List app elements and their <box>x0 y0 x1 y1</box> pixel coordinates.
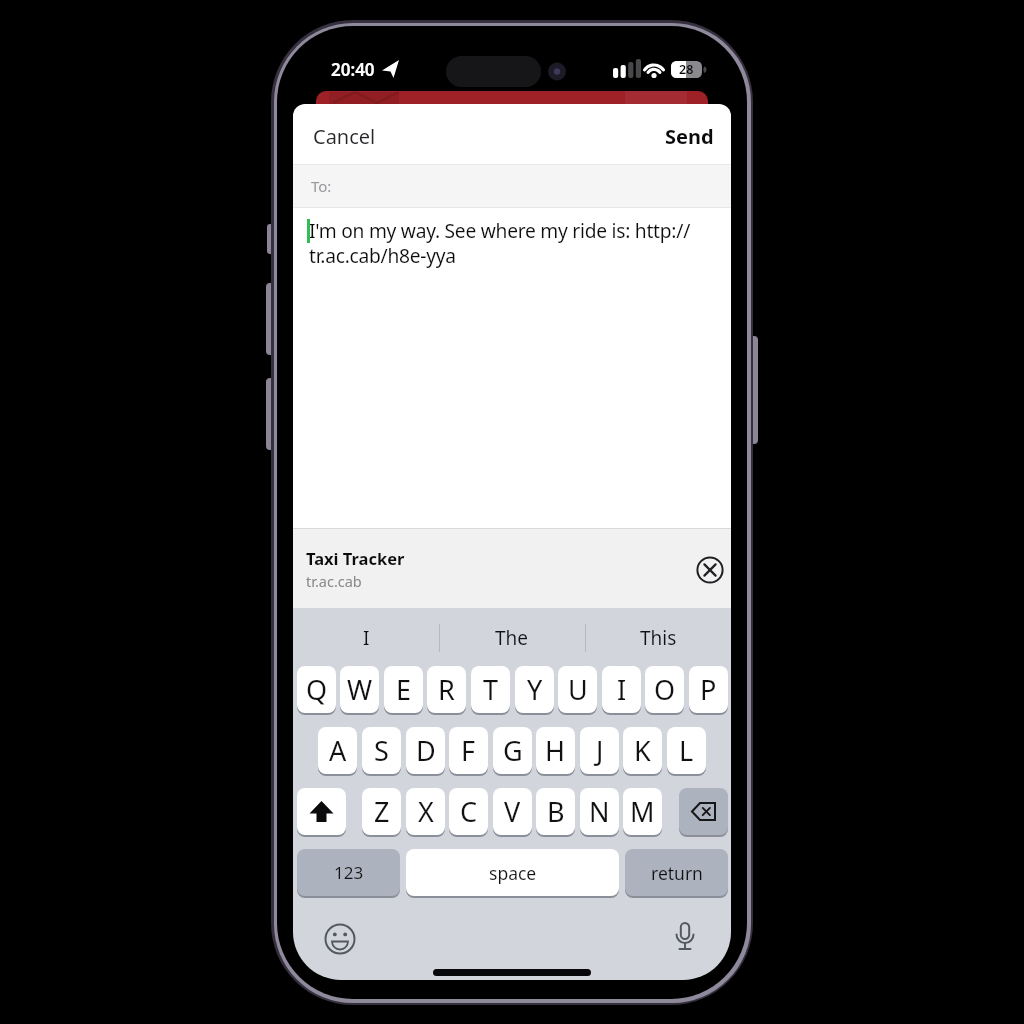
button[interactable]: N <box>580 788 619 835</box>
staticText: 123 <box>334 861 364 884</box>
staticText: G <box>503 732 523 769</box>
button[interactable]: Z <box>362 788 401 835</box>
staticText: O <box>654 671 676 708</box>
button[interactable] <box>695 555 725 585</box>
staticText: V <box>504 793 521 830</box>
button[interactable]: G <box>493 727 532 774</box>
button[interactable]: Send <box>624 121 714 151</box>
staticText: D <box>416 732 436 769</box>
staticText: Q <box>306 671 328 708</box>
staticText: I'm on my way. See where my ride is: htt… <box>309 217 691 268</box>
staticText: C <box>460 793 478 830</box>
staticText: Z <box>374 793 390 830</box>
button[interactable]: space <box>406 849 619 896</box>
button[interactable]: Q <box>297 666 336 713</box>
staticText: A <box>329 732 347 769</box>
staticText: To: <box>311 176 332 196</box>
staticText: Send <box>665 123 714 150</box>
staticText: N <box>589 793 610 830</box>
button[interactable]: X <box>406 788 445 835</box>
button[interactable]: This <box>585 623 731 653</box>
button[interactable]: The <box>439 623 585 653</box>
button[interactable]: O <box>645 666 684 713</box>
button[interactable]: V <box>493 788 532 835</box>
button[interactable]: B <box>536 788 575 835</box>
staticText: R <box>438 671 455 708</box>
staticText: I <box>617 671 627 708</box>
staticText: S <box>374 732 389 769</box>
staticText: X <box>418 793 434 830</box>
staticText: P <box>700 671 717 708</box>
button[interactable]: K <box>623 727 662 774</box>
button[interactable]: S <box>362 727 401 774</box>
button[interactable]: 123 <box>297 849 400 896</box>
button[interactable]: L <box>667 727 706 774</box>
button[interactable]: M <box>623 788 662 835</box>
button[interactable]: F <box>449 727 488 774</box>
button[interactable]: J <box>580 727 619 774</box>
staticText: M <box>630 793 655 830</box>
staticText: This <box>640 625 677 651</box>
button[interactable]: D <box>406 727 445 774</box>
staticText: 20:40 <box>331 58 375 81</box>
button[interactable]: T <box>471 666 510 713</box>
button[interactable] <box>297 788 346 835</box>
button[interactable]: H <box>536 727 575 774</box>
button[interactable] <box>293 164 731 208</box>
staticText: E <box>396 671 412 708</box>
staticText: U <box>568 671 588 708</box>
button[interactable]: A <box>318 727 357 774</box>
button[interactable]: Y <box>515 666 554 713</box>
button[interactable] <box>679 788 728 835</box>
button[interactable]: I <box>602 666 641 713</box>
staticText: B <box>547 793 565 830</box>
staticText: K <box>634 732 651 769</box>
button[interactable]: P <box>689 666 728 713</box>
button[interactable]: I <box>293 623 439 653</box>
staticText: W <box>347 671 373 708</box>
staticText: T <box>483 671 499 708</box>
button[interactable] <box>664 918 706 960</box>
button[interactable]: R <box>427 666 466 713</box>
staticText: F <box>461 732 476 769</box>
button[interactable]: C <box>449 788 488 835</box>
staticText: return <box>651 861 703 885</box>
staticText: H <box>545 732 566 769</box>
button[interactable]: E <box>384 666 423 713</box>
staticText: tr.ac.cab <box>306 571 362 591</box>
staticText: L <box>679 732 694 769</box>
button[interactable]: Cancel <box>313 121 403 151</box>
button[interactable]: U <box>558 666 597 713</box>
staticText: Cancel <box>313 123 376 150</box>
button[interactable]: W <box>340 666 379 713</box>
staticText: Taxi Tracker <box>306 547 405 569</box>
staticText: J <box>596 732 604 769</box>
staticText: I <box>363 625 370 651</box>
button[interactable] <box>293 528 731 608</box>
staticText: Y <box>527 671 543 708</box>
staticText: 28 <box>679 61 694 78</box>
staticText: space <box>489 861 537 885</box>
button[interactable]: return <box>625 849 728 896</box>
button[interactable] <box>319 918 361 960</box>
staticText: The <box>495 625 529 651</box>
